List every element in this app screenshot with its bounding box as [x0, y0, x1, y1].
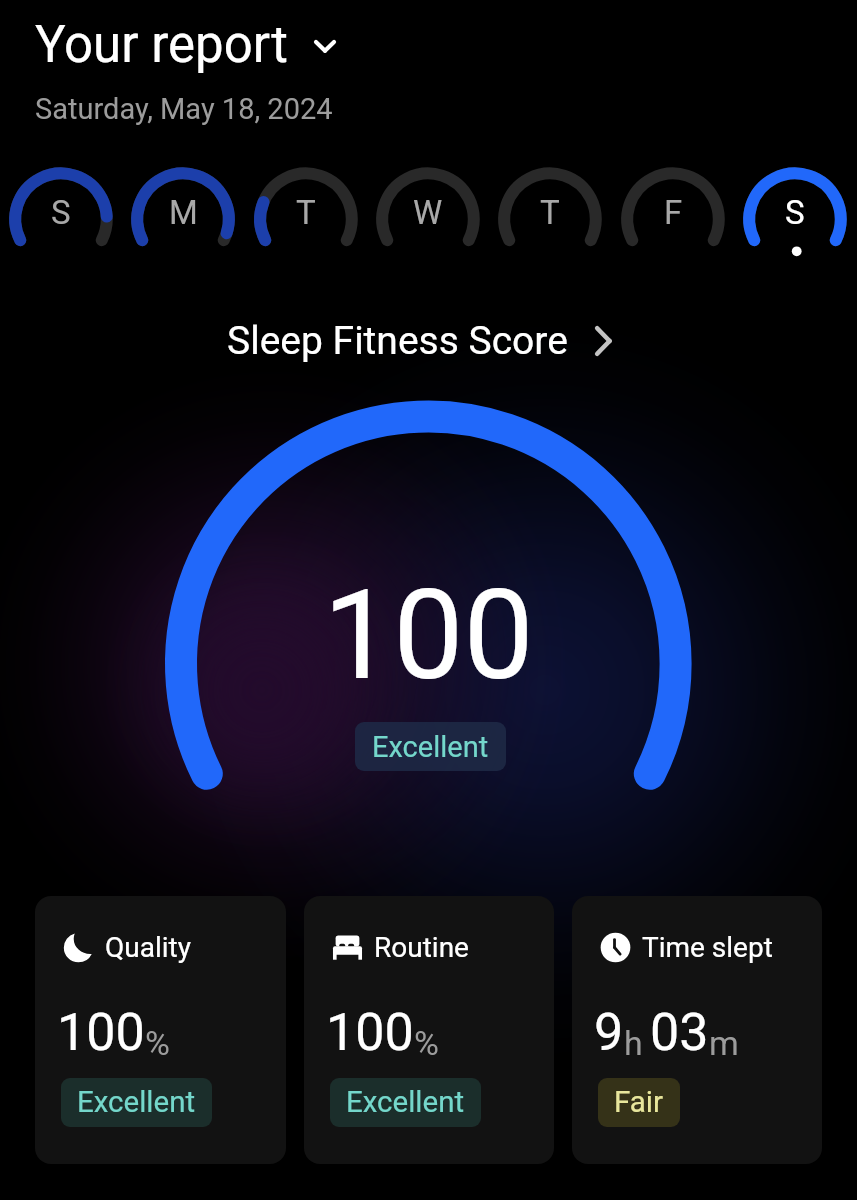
staticText: Time slept — [642, 931, 773, 964]
staticText: Excellent — [77, 1085, 196, 1120]
staticText: T — [540, 193, 560, 232]
button[interactable]: S — [740, 163, 850, 273]
staticText: M — [169, 193, 198, 232]
staticText: Excellent — [346, 1085, 465, 1120]
button[interactable]: Your report — [35, 15, 342, 75]
staticText: Quality — [105, 931, 191, 964]
button[interactable]: Fair — [598, 1078, 680, 1127]
button[interactable]: Excellent — [355, 722, 506, 771]
staticText: 100 — [323, 562, 534, 708]
staticText: Saturday, May 18, 2024 — [35, 92, 333, 126]
button[interactable]: S — [6, 163, 116, 273]
staticText: Routine — [374, 931, 469, 964]
button[interactable]: M — [128, 163, 238, 273]
button[interactable]: Time slept — [572, 896, 822, 1164]
staticText: h — [624, 1023, 643, 1063]
staticText: 100 — [326, 1002, 414, 1063]
staticText: W — [413, 193, 443, 232]
staticText: 03 — [650, 1002, 709, 1063]
staticText: F — [664, 193, 683, 232]
button[interactable]: Quality — [35, 896, 286, 1164]
button[interactable]: Excellent — [330, 1078, 481, 1127]
button[interactable]: Excellent — [61, 1078, 212, 1127]
staticText: 100 — [57, 1002, 145, 1063]
button[interactable]: Routine — [304, 896, 554, 1164]
staticText: % — [145, 1023, 170, 1063]
staticText: Your report — [35, 15, 288, 75]
staticText: T — [296, 193, 316, 232]
staticText: % — [414, 1023, 439, 1063]
other: Expand report picker — [308, 30, 342, 64]
staticText: S — [51, 193, 71, 232]
staticText: Excellent — [372, 730, 489, 764]
staticText: m — [709, 1023, 739, 1063]
button[interactable]: T — [495, 163, 605, 273]
button[interactable]: F — [618, 163, 728, 273]
button[interactable]: Sleep Fitness Score — [227, 318, 622, 364]
staticText: 9 — [594, 1002, 624, 1063]
staticText: S — [785, 193, 805, 232]
staticText: Sleep Fitness Score — [227, 318, 568, 364]
staticText: Fair — [614, 1085, 664, 1120]
button[interactable]: T — [251, 163, 361, 273]
button[interactable]: W — [373, 163, 483, 273]
